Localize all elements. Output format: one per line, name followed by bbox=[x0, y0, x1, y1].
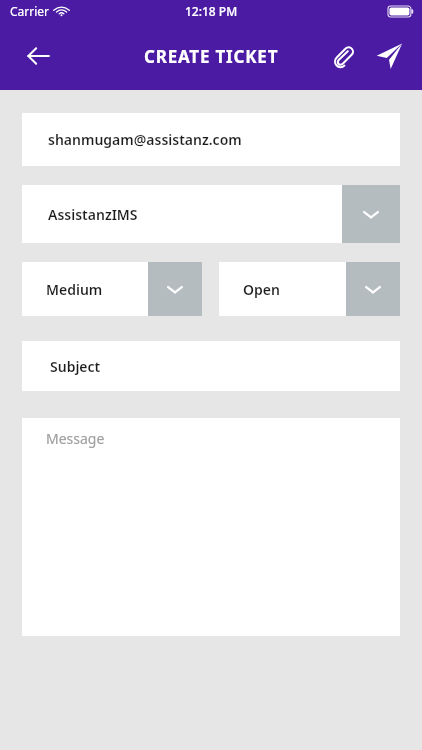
staticText: shanmugam@assistanz.com bbox=[48, 130, 242, 149]
button[interactable]: Attach file bbox=[320, 33, 366, 79]
button[interactable]: AssistanzIMS bbox=[22, 185, 400, 243]
staticText: 12:18 PM bbox=[185, 3, 238, 19]
staticText: Carrier bbox=[10, 3, 50, 19]
staticText: Message bbox=[46, 429, 105, 448]
button[interactable]: shanmugam@assistanz.com bbox=[22, 113, 400, 166]
staticText: AssistanzIMS bbox=[48, 205, 138, 224]
staticText: Open bbox=[243, 280, 280, 299]
staticText: Medium bbox=[46, 280, 103, 299]
button[interactable]: Send bbox=[366, 33, 412, 79]
button[interactable]: Medium bbox=[22, 262, 202, 316]
button[interactable]: Open bbox=[219, 262, 400, 316]
button[interactable]: Subject bbox=[22, 341, 400, 391]
staticText: CREATE TICKET bbox=[144, 45, 279, 68]
staticText: Subject bbox=[50, 357, 101, 376]
button[interactable]: Back bbox=[14, 32, 62, 80]
button[interactable]: Message bbox=[22, 418, 400, 636]
